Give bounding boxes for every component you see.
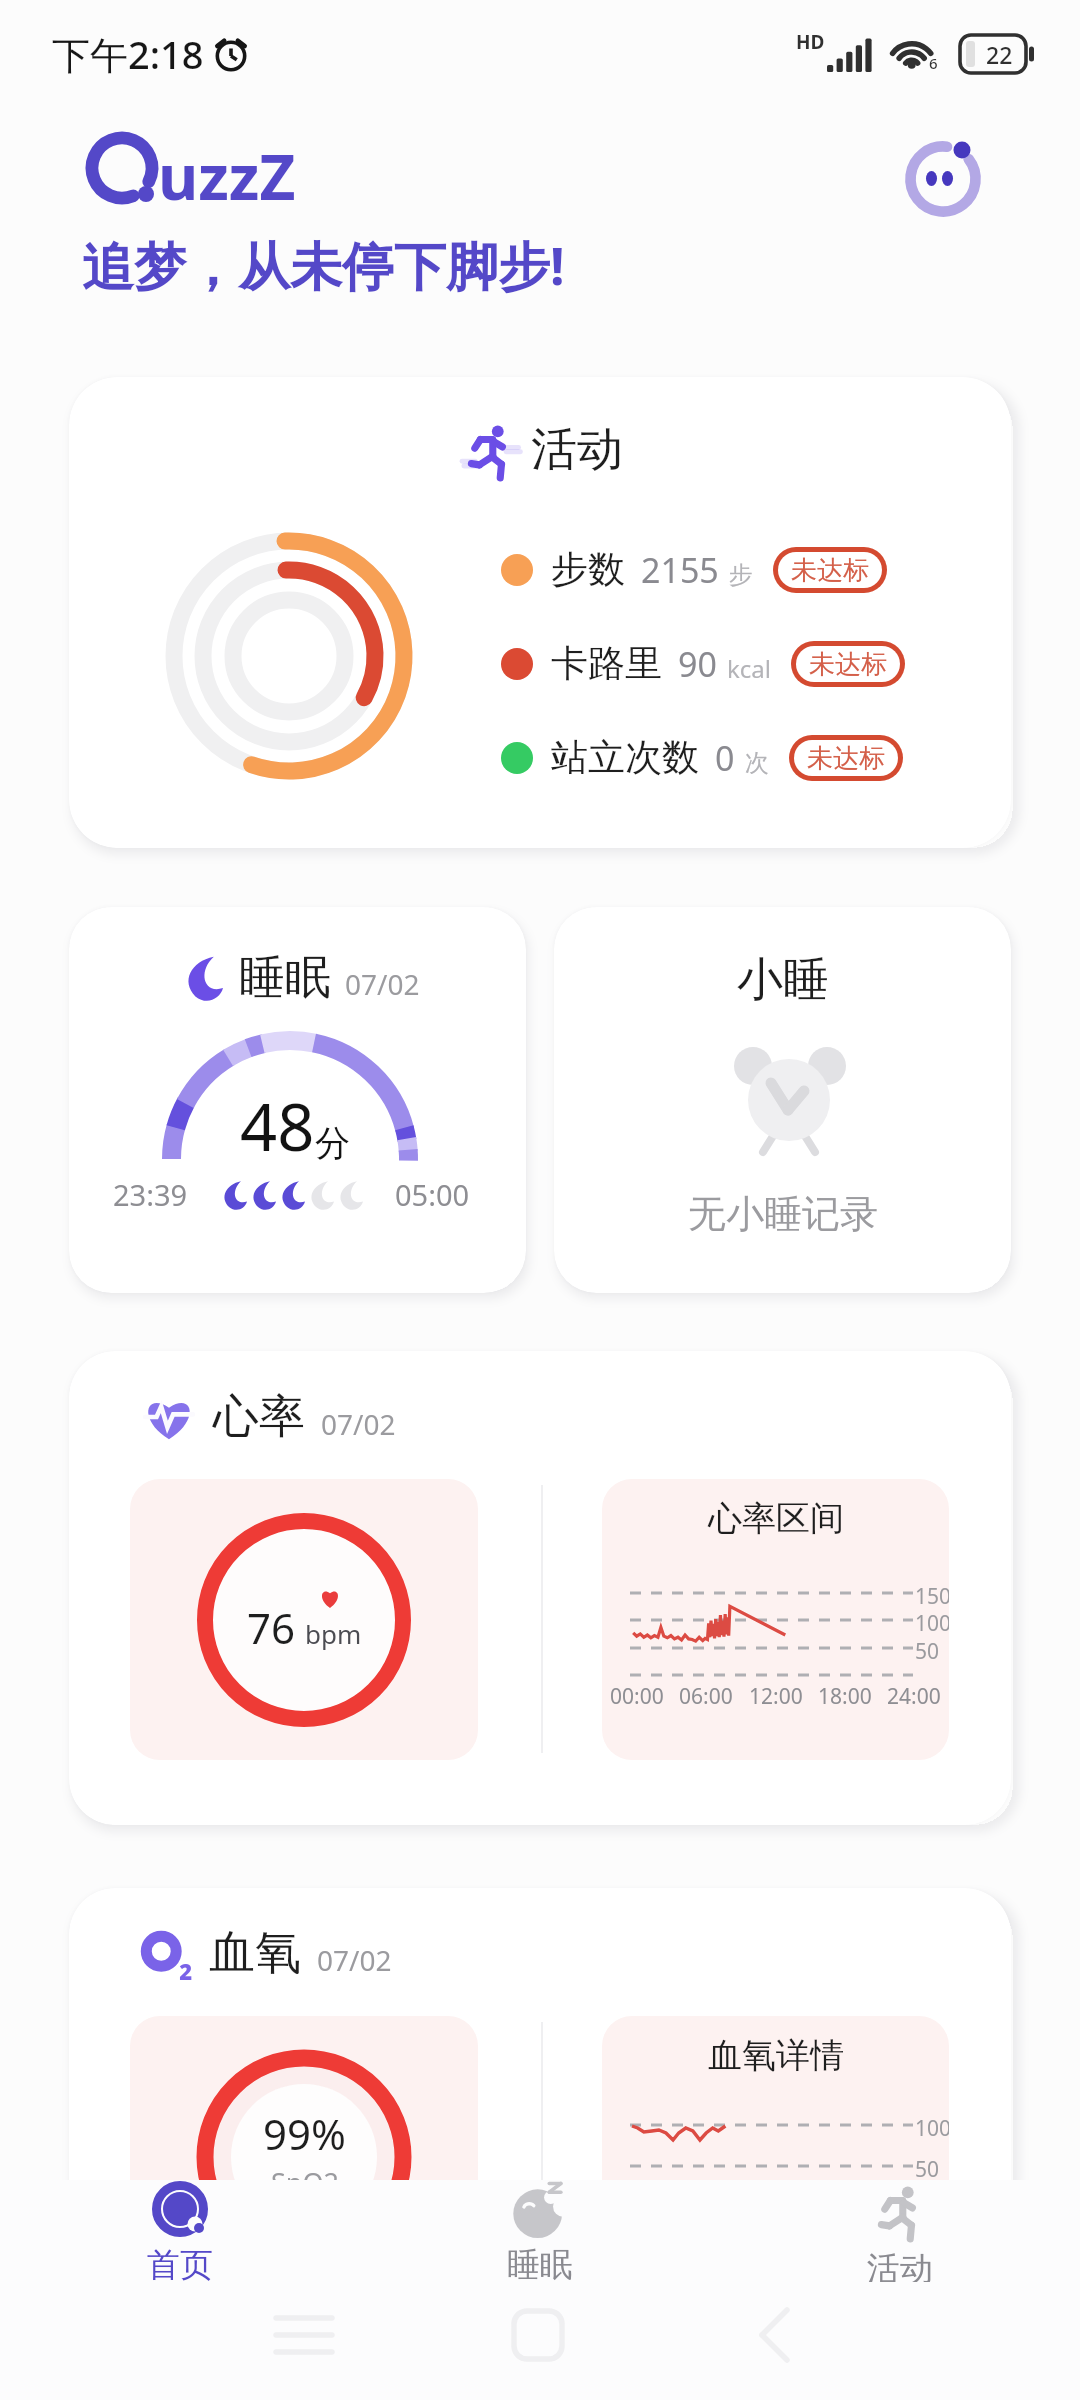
staticText: 活动 (867, 2248, 933, 2282)
staticText: 活动 (531, 421, 623, 479)
staticText: 18:00 (818, 1682, 872, 1711)
staticText: 分 (315, 1121, 350, 1165)
staticText: 100 (915, 2114, 949, 2143)
staticText: 睡眠 (507, 2244, 573, 2282)
button[interactable]: Profile menu (899, 135, 987, 223)
staticText: 2155 (641, 547, 719, 593)
staticText: 心率 (213, 1388, 305, 1446)
staticText: 07/02 (317, 1941, 392, 1979)
staticText: 血氧详情 (708, 2034, 844, 2077)
staticText: 0 (715, 735, 735, 781)
button[interactable]: 心率 (69, 1351, 1011, 1825)
staticText: 99% (263, 2105, 346, 2162)
staticText: 07/02 (345, 965, 420, 1003)
staticText: HD (796, 29, 825, 55)
staticText: 站立次数 (551, 734, 699, 781)
staticText: 150 (915, 1582, 949, 1611)
staticText: 00:00 (610, 1682, 664, 1711)
button[interactable]: Home (478, 2304, 598, 2366)
staticText: 06:00 (679, 1682, 733, 1711)
staticText: 76 (247, 1599, 296, 1656)
staticText: 90 (678, 641, 717, 687)
staticText: 睡眠 (239, 949, 331, 1007)
staticText: 下午2:18 (52, 28, 204, 80)
staticText: 心率区间 (708, 1497, 844, 1540)
button[interactable]: 活动 (720, 2180, 1080, 2282)
staticText: 48 (240, 1082, 315, 1171)
staticText: 血氧 (209, 1924, 301, 1982)
staticText: 07/02 (321, 1405, 396, 1443)
staticText: ₂ (179, 1937, 193, 1986)
button[interactable]: Recent apps (244, 2304, 364, 2366)
staticText: uzzZ (158, 134, 296, 218)
staticText: 24:00 (887, 1682, 941, 1711)
staticText: 卡路里 (551, 640, 662, 687)
staticText: bpm (305, 1616, 362, 1651)
button[interactable]: 首页 (0, 2180, 360, 2282)
staticText: 22 (986, 39, 1013, 70)
staticText: 次 (745, 748, 769, 778)
staticText: 05:00 (395, 1175, 470, 1214)
button[interactable]: 睡眠 (69, 907, 526, 1293)
staticText: kcal (727, 652, 771, 685)
button[interactable]: 睡眠 (360, 2180, 720, 2282)
staticText: 步 (729, 560, 753, 590)
staticText: 100 (915, 1609, 949, 1638)
staticText: 无小睡记录 (688, 1190, 878, 1238)
staticText: 50 (915, 2155, 940, 2184)
button[interactable]: 小睡 (554, 907, 1011, 1293)
staticText: 小睡 (737, 951, 829, 1009)
staticText: 12:00 (749, 1682, 803, 1711)
staticText: 50 (915, 1637, 940, 1666)
staticText: 23:39 (113, 1175, 188, 1214)
button[interactable]: 活动 (69, 377, 1011, 848)
staticText: 未达标 (809, 648, 887, 681)
staticText: 追梦，从未停下脚步! (82, 229, 565, 300)
staticText: 首页 (147, 2244, 213, 2282)
staticText: 未达标 (807, 742, 885, 775)
staticText: 6 (929, 53, 938, 73)
staticText: SpO2 (271, 2164, 339, 2201)
button[interactable]: ₂ (69, 1888, 1011, 2362)
staticText: 未达标 (791, 554, 869, 587)
staticText: 步数 (551, 546, 625, 593)
